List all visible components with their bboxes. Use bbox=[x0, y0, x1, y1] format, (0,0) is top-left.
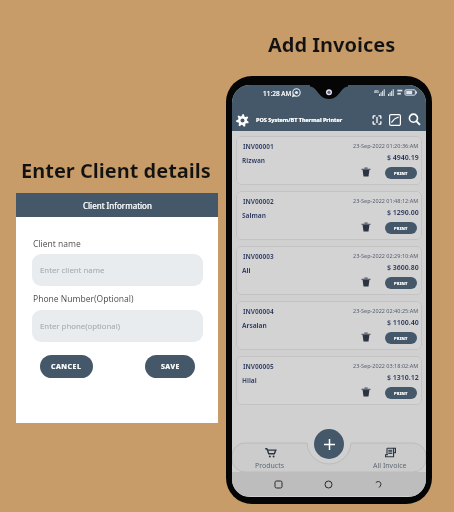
button[interactable]: INV00002 bbox=[236, 191, 422, 240]
staticText: 23-Sep-2022 03:18:02:AM bbox=[353, 362, 419, 369]
staticText: POS System/BT Thermal Printer bbox=[256, 116, 343, 123]
button[interactable]: PRINT bbox=[385, 387, 417, 399]
staticText: $ 1290.00 bbox=[387, 208, 419, 218]
button[interactable]: INV00001 bbox=[236, 136, 422, 185]
button[interactable]: INV00005 bbox=[236, 356, 422, 405]
button[interactable]: Reports bbox=[389, 114, 401, 126]
button[interactable]: Delete bbox=[361, 332, 371, 342]
staticText: SAVE bbox=[161, 362, 180, 372]
other: Recents bbox=[325, 481, 332, 488]
staticText: Hilal bbox=[242, 376, 257, 385]
staticText: 11:28 AM bbox=[263, 89, 292, 98]
button[interactable]: Enter phone(optional) bbox=[32, 310, 203, 342]
staticText: All Invoice bbox=[373, 461, 407, 471]
button[interactable]: INV00003 bbox=[236, 246, 422, 295]
staticText: INV00002 bbox=[243, 197, 274, 206]
staticText: 23-Sep-2022 01:20:36:AM bbox=[353, 142, 419, 149]
staticText: 4G bbox=[374, 89, 379, 94]
staticText: Enter client name bbox=[40, 265, 105, 276]
button[interactable]: INV00004 bbox=[236, 301, 422, 350]
other: Back bbox=[375, 480, 383, 488]
button[interactable]: Delete bbox=[361, 277, 371, 287]
staticText: PRINT bbox=[394, 171, 408, 176]
staticText: CANCEL bbox=[51, 362, 82, 372]
button[interactable]: Bluetooth printer bbox=[371, 114, 383, 126]
staticText: INV00003 bbox=[243, 252, 274, 261]
staticText: INV00004 bbox=[243, 307, 274, 316]
staticText: 23-Sep-2022 02:40:25:AM bbox=[353, 307, 419, 314]
staticText: Phone Number(Optional) bbox=[33, 293, 134, 305]
staticText: INV00001 bbox=[243, 142, 274, 151]
other: Home bbox=[275, 481, 282, 488]
button[interactable]: CANCEL bbox=[40, 355, 93, 378]
staticText: Salman bbox=[242, 211, 266, 220]
staticText: INV00005 bbox=[243, 362, 274, 371]
staticText: $ 4940.19 bbox=[387, 153, 419, 163]
button[interactable]: Products bbox=[240, 444, 300, 473]
staticText: 23-Sep-2022 02:29:10:AM bbox=[353, 252, 419, 259]
staticText: Rizwan bbox=[242, 156, 266, 165]
button[interactable]: Delete bbox=[361, 222, 371, 232]
button[interactable]: Settings bbox=[236, 114, 249, 127]
button[interactable]: PRINT bbox=[385, 222, 417, 234]
staticText: Products bbox=[255, 461, 285, 471]
staticText: $ 1310.12 bbox=[387, 373, 419, 383]
staticText: PRINT bbox=[394, 226, 408, 231]
button[interactable]: Delete bbox=[361, 387, 371, 397]
button[interactable]: PRINT bbox=[385, 332, 417, 344]
button[interactable]: All Invoice bbox=[360, 444, 420, 473]
button[interactable]: Search bbox=[408, 113, 421, 126]
button[interactable]: Delete bbox=[361, 167, 371, 177]
staticText: Arsalan bbox=[242, 321, 267, 330]
staticText: 23-Sep-2022 01:48:12:AM bbox=[353, 197, 419, 204]
staticText: PRINT bbox=[394, 336, 408, 341]
staticText: Add Invoices bbox=[268, 31, 396, 58]
staticText: Enter Client details bbox=[21, 157, 211, 184]
staticText: PRINT bbox=[394, 391, 408, 396]
button[interactable]: Enter client name bbox=[32, 254, 203, 286]
staticText: Enter phone(optional) bbox=[40, 321, 121, 332]
button[interactable]: SAVE bbox=[145, 355, 195, 378]
button[interactable]: Add invoice bbox=[314, 429, 344, 459]
staticText: $ 1100.40 bbox=[387, 318, 419, 328]
staticText: Ali bbox=[242, 266, 251, 275]
button[interactable]: PRINT bbox=[385, 277, 417, 289]
staticText: $ 3600.80 bbox=[387, 263, 419, 273]
button[interactable]: PRINT bbox=[385, 167, 417, 179]
staticText: PRINT bbox=[394, 281, 408, 286]
staticText: Client Information bbox=[83, 200, 152, 211]
staticText: Client name bbox=[33, 238, 81, 250]
